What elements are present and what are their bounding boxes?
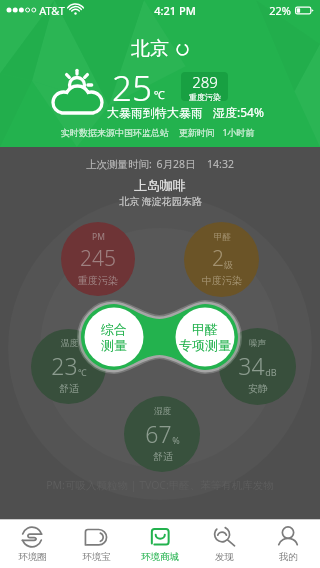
staticText: 上次测量时间: xyxy=(86,157,152,171)
button[interactable]: 综合 xyxy=(84,307,144,367)
staticText: 综合 xyxy=(101,321,127,337)
other: 环境圈 xyxy=(20,526,44,548)
staticText: 245 xyxy=(80,244,116,273)
staticText: 中度污染 xyxy=(202,274,242,287)
staticText: % xyxy=(172,434,180,446)
other: Refresh xyxy=(176,43,189,56)
staticText: 测量 xyxy=(101,337,127,353)
staticText: 实时数据来源中国环监总站 xyxy=(61,127,169,138)
staticText: 34 xyxy=(238,350,265,381)
staticText: 2 xyxy=(212,244,224,273)
staticText: 舒适 xyxy=(59,382,79,395)
staticText: 湿度:54% xyxy=(213,104,264,120)
staticText: 专项测量 xyxy=(179,337,231,353)
staticText: 67 xyxy=(145,418,172,449)
staticText: 重度污染 xyxy=(189,92,221,101)
staticText: ℃ xyxy=(78,366,87,378)
staticText: 1小时前 xyxy=(222,126,255,138)
staticText: 甲醛 xyxy=(192,321,218,337)
staticText: 4:21 PM xyxy=(154,3,196,18)
staticText: 湿度 xyxy=(154,406,171,417)
staticText: 温度 xyxy=(61,338,78,349)
button[interactable]: 北京 xyxy=(131,37,189,61)
staticText: 289 xyxy=(192,72,218,92)
button[interactable]: PM xyxy=(61,222,135,296)
staticText: 发现 xyxy=(215,551,234,563)
staticText: PM:可吸入颗粒物 | TVOC:甲醛、苯等有机库发物 xyxy=(46,478,274,492)
staticText: 22% xyxy=(269,3,291,18)
staticText: 舒适 xyxy=(153,450,173,463)
button[interactable]: 甲醛 xyxy=(184,222,259,297)
button[interactable]: 环境圈 xyxy=(0,520,64,568)
button[interactable]: 环境宝 xyxy=(64,520,128,568)
other: 环境商城 xyxy=(148,526,172,548)
staticText: 环境宝 xyxy=(82,551,111,563)
button[interactable]: 甲醛 xyxy=(175,307,235,367)
other: 环境宝 xyxy=(84,526,108,548)
staticText: ℃ xyxy=(154,87,165,102)
staticText: PM xyxy=(92,231,105,243)
staticText: 北京 xyxy=(131,37,169,61)
staticText: 23 xyxy=(51,350,78,381)
button[interactable]: 噪声 xyxy=(219,328,296,405)
staticText: AT&T xyxy=(39,3,65,18)
staticText: 6月28日 xyxy=(156,157,196,171)
staticText: 我的 xyxy=(279,551,298,563)
staticText: 级 xyxy=(224,259,233,270)
staticText: dB xyxy=(265,366,277,378)
staticText: 重度污染 xyxy=(78,274,118,287)
button[interactable]: 我的 xyxy=(256,520,320,568)
button[interactable]: 环境商城 xyxy=(128,520,192,568)
button[interactable]: 温度 xyxy=(31,329,106,404)
staticText: 噪声 xyxy=(249,338,266,349)
staticText: 更新时间 xyxy=(179,127,215,138)
staticText: 大暴雨到特大暴雨 xyxy=(107,105,203,120)
other: 我的 xyxy=(276,526,300,548)
staticText: 14:32 xyxy=(207,157,234,171)
other: 发现 xyxy=(212,526,236,548)
button[interactable]: 289 xyxy=(181,72,228,101)
button[interactable]: 发现 xyxy=(192,520,256,568)
staticText: 25 xyxy=(112,64,152,112)
staticText: 甲醛 xyxy=(214,232,231,243)
button[interactable]: 湿度 xyxy=(124,396,200,472)
staticText: 环境圈 xyxy=(18,551,47,563)
staticText: 上岛咖啡 xyxy=(134,177,186,193)
staticText: 安静 xyxy=(248,382,268,395)
staticText: 北京 海淀花园东路 xyxy=(119,194,202,208)
staticText: 环境商城 xyxy=(141,551,179,563)
